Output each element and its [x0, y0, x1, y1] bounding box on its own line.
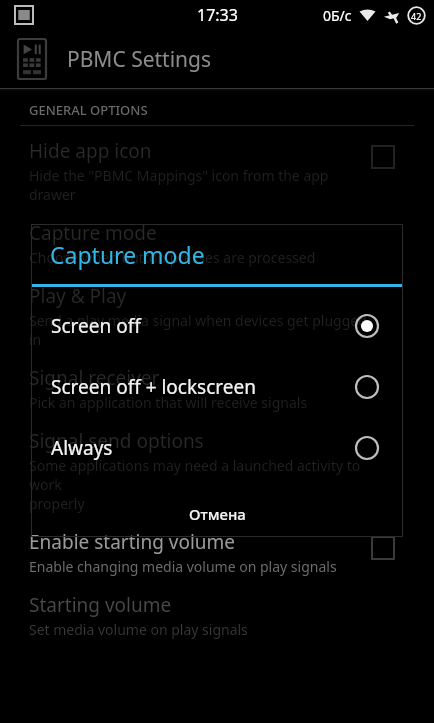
- staticText: 42: [411, 10, 422, 22]
- button[interactable]: Starting volume: [0, 592, 434, 639]
- button[interactable]: Capture mode: [0, 220, 434, 267]
- staticText: Choose when button presses are processed: [29, 248, 316, 267]
- staticText: Send a play media signal when devices ge…: [29, 311, 372, 349]
- staticText: Starting volume: [29, 592, 172, 618]
- button[interactable]: Play & Play: [0, 283, 434, 349]
- button[interactable]: Отмена: [31, 491, 403, 537]
- button[interactable]: Screen off + lockscreen: [31, 356, 403, 417]
- staticText: 17:33: [197, 4, 238, 26]
- staticText: PBMC Settings: [67, 45, 212, 74]
- staticText: Some applications may need a launched ac…: [29, 456, 372, 513]
- staticText: Enable changing media volume on play sig…: [29, 557, 337, 576]
- staticText: Отмена: [189, 504, 246, 524]
- staticText: Signal receiver: [29, 365, 160, 391]
- staticText: Hide the "PBMC Mappings" icon from the a…: [29, 166, 329, 204]
- staticText: Enable starting volume: [29, 529, 236, 555]
- button[interactable]: Signal receiver: [0, 365, 434, 412]
- staticText: Set media volume on play signals: [29, 620, 248, 639]
- other: App icon: [18, 39, 46, 79]
- button[interactable]: Always: [31, 417, 403, 478]
- staticText: 0Б/с: [323, 6, 352, 25]
- button[interactable]: Signal send options: [0, 428, 434, 513]
- staticText: Pick an application that will receive si…: [29, 393, 308, 412]
- staticText: Screen off + lockscreen: [51, 374, 353, 400]
- staticText: Always: [51, 435, 353, 461]
- button[interactable]: Hide app icon: [0, 138, 434, 204]
- staticText: Capture mode: [29, 220, 157, 246]
- other: Image: [15, 6, 33, 24]
- staticText: Screen off: [51, 313, 353, 339]
- staticText: Signal send options: [29, 428, 204, 454]
- button[interactable]: Screen off: [31, 295, 403, 356]
- staticText: GENERAL OPTIONS: [29, 101, 148, 119]
- staticText: Capture mode: [50, 239, 205, 270]
- staticText: Play & Play: [29, 283, 127, 309]
- staticText: Hide app icon: [29, 138, 152, 164]
- button[interactable]: Enable starting volume: [0, 529, 434, 576]
